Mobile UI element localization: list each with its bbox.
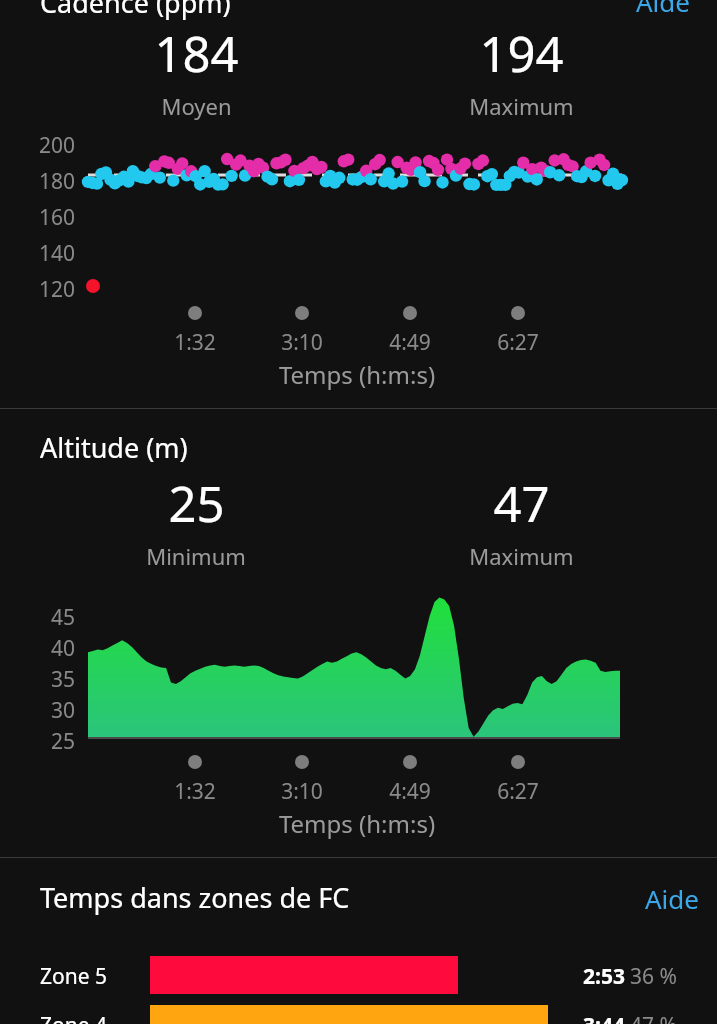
staticText: 45 xyxy=(0,603,75,632)
staticText: 180 xyxy=(0,167,75,196)
staticText: Temps (h:m:s) xyxy=(227,807,487,840)
staticText: 140 xyxy=(0,239,75,268)
staticText: 2:53 xyxy=(480,962,625,991)
staticText: 120 xyxy=(0,275,75,304)
staticText: 25 xyxy=(0,727,75,756)
staticText: Cadence (ppm) xyxy=(40,0,231,21)
staticText: 6:27 xyxy=(388,328,648,357)
staticText: 3:44 xyxy=(480,1011,625,1024)
staticText: 35 xyxy=(0,665,75,694)
staticText: 3:10 xyxy=(172,777,432,806)
button[interactable]: Zone 4 xyxy=(0,1002,717,1024)
staticText: 36 % xyxy=(630,962,710,991)
staticText: Temps dans zones de FC xyxy=(40,879,350,916)
staticText: 194 xyxy=(479,20,564,87)
button[interactable]: 47 xyxy=(411,470,631,571)
staticText: Minimum xyxy=(146,541,246,571)
staticText: Zone 5 xyxy=(40,962,108,991)
staticText: 40 xyxy=(0,634,75,663)
button[interactable]: Zone 5 xyxy=(0,953,717,997)
staticText: 4:49 xyxy=(280,328,540,357)
staticText: 1:32 xyxy=(65,777,325,806)
staticText: 25 xyxy=(168,470,225,537)
staticText: 184 xyxy=(154,20,239,87)
staticText: 4:49 xyxy=(280,777,540,806)
staticText: 47 % xyxy=(630,1011,710,1024)
button[interactable]: 194 xyxy=(411,20,631,121)
staticText: Moyen xyxy=(161,91,232,121)
button[interactable]: 184 xyxy=(86,20,306,121)
staticText: Aide xyxy=(636,0,690,19)
staticText: 3:10 xyxy=(172,328,432,357)
staticText: 30 xyxy=(0,696,75,725)
staticText: Altitude (m) xyxy=(40,429,188,466)
staticText: 47 xyxy=(493,470,550,537)
staticText: 200 xyxy=(0,131,75,160)
button[interactable]: Aide xyxy=(645,881,699,916)
button[interactable]: Aide xyxy=(636,0,690,19)
staticText: Zone 4 xyxy=(40,1011,108,1024)
staticText: 160 xyxy=(0,203,75,232)
staticText: 1:32 xyxy=(65,328,325,357)
staticText: 6:27 xyxy=(388,777,648,806)
staticText: Temps (h:m:s) xyxy=(227,358,487,391)
staticText: Maximum xyxy=(469,541,574,571)
staticText: Maximum xyxy=(469,91,574,121)
staticText: Aide xyxy=(645,881,699,916)
button[interactable]: 25 xyxy=(86,470,306,571)
